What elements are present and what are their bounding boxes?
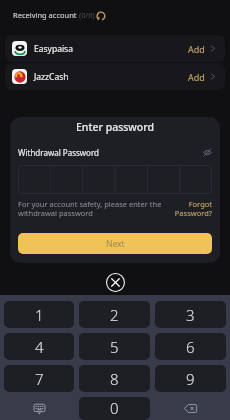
button[interactable]: 7 [4,365,74,392]
button[interactable] [18,165,212,194]
button[interactable]: Show password [203,148,212,157]
button[interactable]: 9 [155,365,226,392]
button[interactable]: 3 [155,301,226,328]
button[interactable]: 2 [79,301,150,328]
staticText: For your account safety, please enter th… [18,199,169,219]
staticText: JazzCash [34,71,69,83]
staticText: 1 [35,305,44,325]
button[interactable]: 0 [79,397,150,420]
button[interactable]: 1 [4,301,74,328]
button[interactable]: Switch keyboard [4,397,74,420]
staticText: 9 [186,369,195,389]
staticText: 0 [110,398,119,418]
button[interactable]: Forgot Password? [174,199,212,219]
staticText: Enter password [18,120,212,134]
staticText: 7 [35,369,44,389]
staticText: 5 [110,337,119,357]
staticText: Add [188,71,205,83]
button[interactable]: JazzCash [12,63,217,90]
staticText: Next [106,238,125,250]
staticText: Receiving account [13,10,77,20]
button[interactable]: 8 [79,365,150,392]
button[interactable]: 6 [155,333,226,360]
button[interactable]: Refresh [96,11,106,21]
staticText: Withdrawal Password [18,147,99,158]
staticText: 2 [110,305,119,325]
staticText: 6 [186,337,195,357]
staticText: (0/6) [79,10,95,20]
staticText: 4 [35,337,44,357]
button[interactable]: 5 [79,333,150,360]
button[interactable]: Backspace [155,397,226,420]
staticText: Easypaisa [34,43,73,55]
staticText: 8 [110,369,119,389]
staticText: Add [188,43,205,55]
button[interactable]: Next [18,233,212,254]
button[interactable]: Easypaisa [12,35,217,62]
button[interactable]: Close [106,273,125,292]
staticText: 3 [186,305,195,325]
button[interactable]: 4 [4,333,74,360]
